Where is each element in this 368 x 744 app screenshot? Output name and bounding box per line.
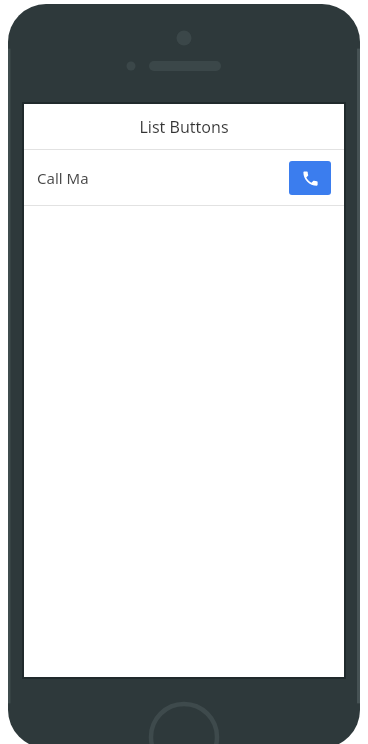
staticText: Call Ma xyxy=(37,168,289,188)
staticText: List Buttons xyxy=(139,116,229,138)
button[interactable]: Call xyxy=(289,161,331,195)
button[interactable]: Call Ma xyxy=(24,150,344,205)
